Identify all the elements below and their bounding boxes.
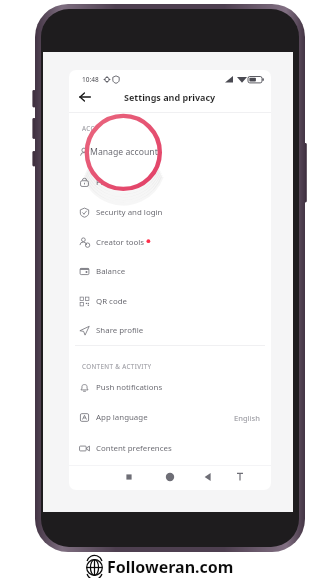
- staticText: Share profile: [96, 325, 144, 336]
- button[interactable]: Back: [76, 88, 94, 106]
- staticText: Creator tools: [96, 237, 145, 248]
- staticText: Manage account: [96, 147, 158, 158]
- button[interactable]: QR code: [69, 287, 271, 316]
- button[interactable]: Privacy: [69, 168, 271, 197]
- staticText: Content preferences: [96, 443, 172, 454]
- staticText: English: [234, 413, 260, 423]
- staticText: 10:48: [82, 75, 99, 84]
- button[interactable]: Manage account: [69, 138, 271, 167]
- button[interactable]: Recents: [118, 466, 140, 488]
- staticText: ACCOUNT: [82, 124, 114, 133]
- staticText: App language: [96, 412, 148, 423]
- staticText: Balance: [96, 266, 126, 277]
- button[interactable]: Back: [197, 466, 219, 488]
- staticText: CONTENT & ACTIVITY: [82, 362, 152, 371]
- button[interactable]: Home: [159, 466, 181, 488]
- button[interactable]: Share profile: [69, 316, 271, 345]
- staticText: Privacy: [96, 177, 123, 188]
- button[interactable]: Push notifications: [69, 373, 271, 402]
- button[interactable]: Balance: [69, 257, 271, 286]
- staticText: Settings and privacy: [124, 91, 216, 103]
- staticText: Push notifications: [96, 382, 163, 393]
- button[interactable]: Security and login: [69, 198, 271, 227]
- staticText: QR code: [96, 296, 127, 307]
- button[interactable]: Creator tools: [69, 228, 271, 257]
- button[interactable]: Hide keyboard: [229, 466, 251, 488]
- button[interactable]: App language: [69, 403, 271, 432]
- staticText: Manage account: [90, 146, 158, 158]
- button[interactable]: Content preferences: [69, 434, 271, 463]
- staticText: Security and login: [96, 207, 163, 218]
- staticText: Followeran.com: [107, 556, 234, 578]
